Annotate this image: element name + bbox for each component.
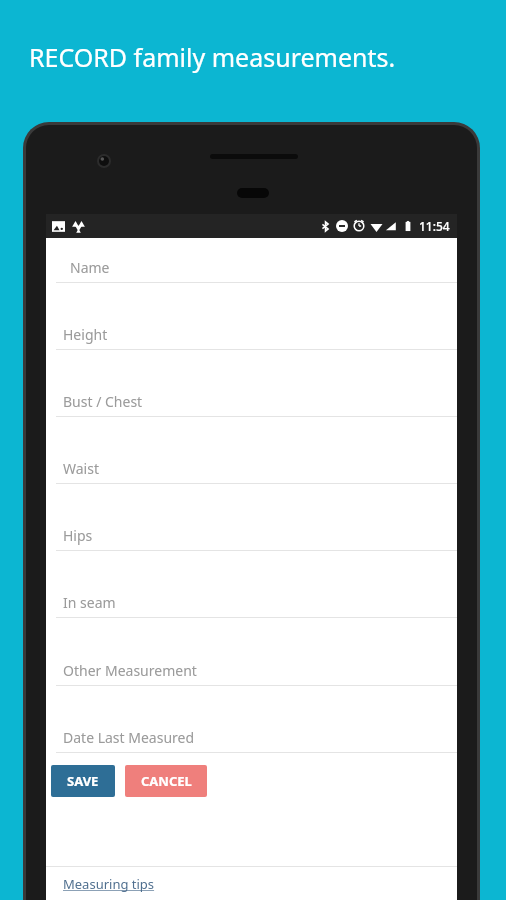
staticText: Height: [63, 325, 108, 344]
staticText: Name: [70, 258, 110, 277]
staticText: CANCEL: [141, 772, 192, 790]
button[interactable]: Waist: [46, 417, 457, 484]
button[interactable]: Date Last Measured: [46, 686, 457, 753]
button[interactable]: In seam: [46, 551, 457, 618]
button[interactable]: SAVE: [51, 765, 115, 797]
staticText: Other Measurement: [63, 661, 197, 680]
button[interactable]: Measuring tips: [46, 867, 457, 900]
staticText: 11:54: [419, 218, 450, 234]
button[interactable]: Height: [46, 283, 457, 350]
button[interactable]: Bust / Chest: [46, 350, 457, 417]
button[interactable]: Name: [46, 238, 457, 283]
staticText: Hips: [63, 526, 93, 545]
staticText: Waist: [63, 459, 99, 478]
staticText: Bust / Chest: [63, 392, 143, 411]
staticText: Date Last Measured: [63, 728, 195, 747]
button[interactable]: CANCEL: [125, 765, 207, 797]
staticText: In seam: [63, 593, 116, 612]
button[interactable]: Other Measurement: [46, 618, 457, 686]
button[interactable]: Hips: [46, 484, 457, 551]
staticText: RECORD family measurements.: [29, 40, 396, 74]
staticText: Measuring tips: [63, 875, 155, 893]
staticText: SAVE: [67, 772, 99, 790]
